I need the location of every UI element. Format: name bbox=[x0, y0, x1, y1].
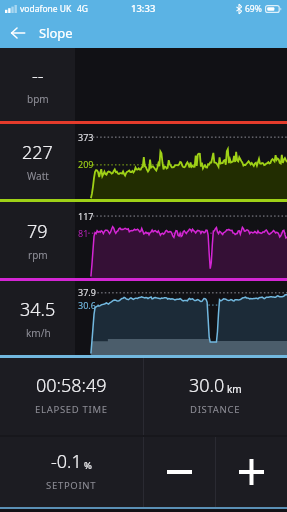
button[interactable]: 00:58:49 bbox=[0, 358, 143, 435]
staticText: 34.5 bbox=[20, 297, 56, 322]
staticText: Watt bbox=[27, 169, 49, 183]
staticText: -- bbox=[32, 63, 44, 88]
staticText: 373 bbox=[78, 131, 94, 143]
button[interactable]: 227 bbox=[0, 124, 75, 199]
staticText: 209 bbox=[78, 158, 94, 170]
staticText: 00:58:49 bbox=[36, 373, 107, 398]
staticText: 30.6 bbox=[78, 299, 96, 311]
staticText: 69% bbox=[245, 3, 262, 15]
staticText: 81 bbox=[78, 227, 89, 239]
staticText: % bbox=[84, 459, 92, 472]
staticText: Slope bbox=[39, 24, 73, 42]
staticText: 13:33 bbox=[131, 2, 156, 15]
button[interactable]: Increase setpoint bbox=[216, 437, 287, 507]
staticText: 4G bbox=[77, 3, 89, 15]
button[interactable]: Decrease setpoint bbox=[144, 437, 215, 507]
button[interactable]: 34.5 bbox=[0, 281, 75, 355]
button[interactable]: 79 bbox=[0, 202, 75, 278]
staticText: rpm bbox=[28, 248, 48, 262]
staticText: 37.9 bbox=[78, 286, 96, 298]
staticText: vodafone UK bbox=[20, 3, 72, 15]
staticText: 117 bbox=[78, 210, 94, 222]
button[interactable]: Back bbox=[0, 17, 36, 48]
staticText: -0.1 bbox=[51, 449, 82, 474]
staticText: DISTANCE bbox=[190, 403, 241, 416]
staticText: 227 bbox=[22, 140, 53, 165]
button[interactable]: -- bbox=[0, 48, 75, 121]
staticText: SETPOINT bbox=[46, 479, 97, 492]
staticText: km/h bbox=[26, 326, 51, 340]
button[interactable]: 30.0 bbox=[144, 358, 287, 435]
staticText: bpm bbox=[27, 92, 49, 106]
staticText: km bbox=[227, 382, 242, 396]
staticText: 30.0 bbox=[189, 373, 225, 398]
staticText: ELAPSED TIME bbox=[35, 403, 108, 416]
button[interactable]: -0.1 bbox=[0, 437, 143, 507]
staticText: 79 bbox=[27, 219, 48, 244]
